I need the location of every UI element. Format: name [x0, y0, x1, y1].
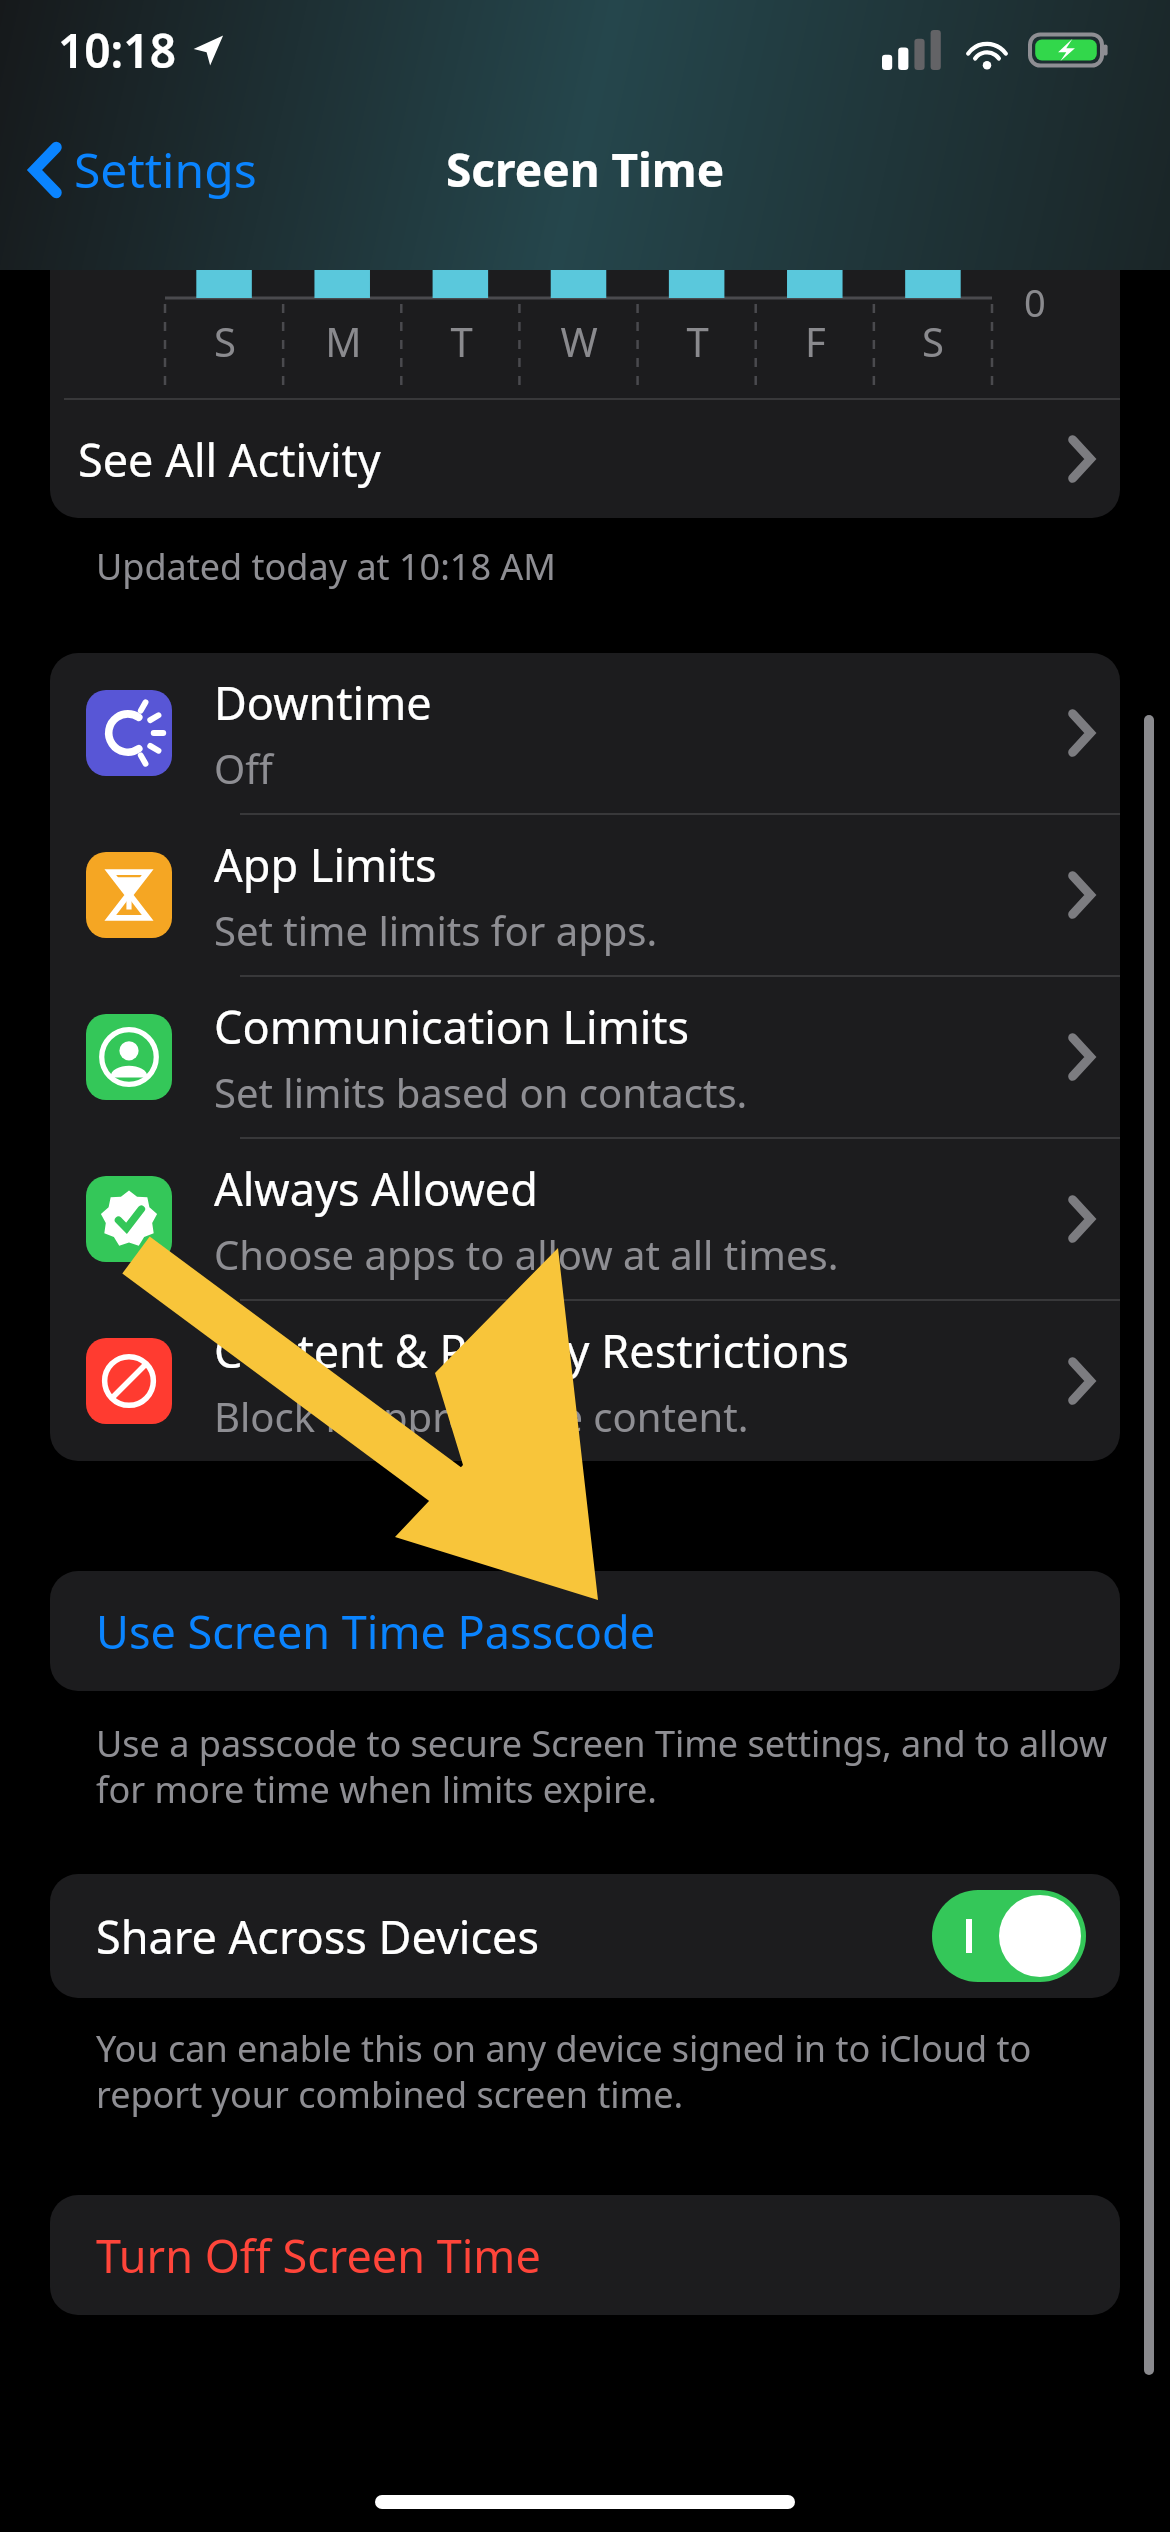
staticText: T	[686, 314, 709, 368]
staticText: Downtime	[214, 672, 432, 733]
staticText: Always Allowed	[214, 1158, 538, 1219]
staticText: App Limits	[214, 834, 437, 895]
staticText: Updated today at 10:18 AM	[96, 542, 557, 591]
staticText: See All Activity	[78, 429, 381, 490]
staticText: Block inappropriate content.	[214, 1389, 749, 1443]
staticText: 0	[1024, 276, 1046, 328]
staticText: Screen Time	[446, 138, 725, 201]
staticText: Off	[214, 741, 273, 795]
staticText: M	[325, 314, 362, 368]
button[interactable]: Content & Privacy Restrictions	[50, 1301, 1120, 1461]
staticText: S	[922, 314, 944, 368]
button[interactable]: Turn Off Screen Time	[50, 2195, 1120, 2315]
button[interactable]: Always Allowed	[50, 1139, 1120, 1299]
staticText: Share Across Devices	[96, 1906, 539, 1967]
staticText: W	[560, 314, 598, 368]
staticText: Set limits based on contacts.	[214, 1065, 748, 1119]
staticText: Content & Privacy Restrictions	[214, 1320, 849, 1381]
staticText: You can enable this on any device signed…	[96, 2024, 1110, 2119]
staticText: Choose apps to allow at all times.	[214, 1227, 839, 1281]
staticText: Turn Off Screen Time	[96, 2225, 541, 2286]
staticText: T	[450, 314, 473, 368]
button[interactable]: Use Screen Time Passcode	[50, 1571, 1120, 1691]
staticText: Set time limits for apps.	[214, 903, 658, 957]
button[interactable]: Share Across Devices	[50, 1874, 1120, 1998]
button[interactable]: Settings	[22, 127, 265, 212]
button[interactable]: Communication Limits	[50, 977, 1120, 1137]
button[interactable]: App Limits	[50, 815, 1120, 975]
staticText: Communication Limits	[214, 996, 690, 1057]
staticText: Settings	[74, 137, 257, 202]
button[interactable]: See All Activity	[50, 400, 1120, 518]
staticText: Use Screen Time Passcode	[96, 1601, 656, 1662]
staticText: S	[214, 314, 236, 368]
button[interactable]: Downtime	[50, 653, 1120, 813]
button[interactable]: Share Across Devices toggle, on	[932, 1890, 1086, 1982]
staticText: F	[805, 314, 826, 368]
staticText: 10:18	[58, 19, 176, 82]
staticText: Use a passcode to secure Screen Time set…	[96, 1719, 1110, 1814]
